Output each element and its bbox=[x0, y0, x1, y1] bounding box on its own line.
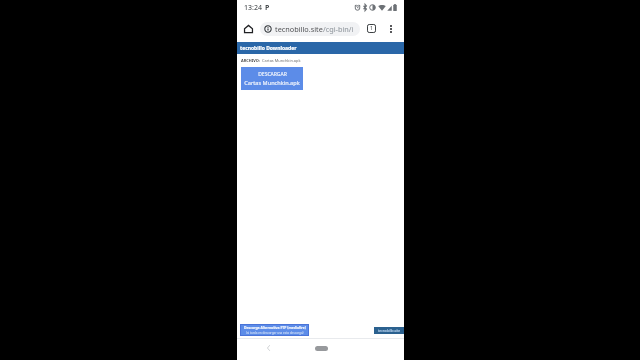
staticText: /cgi-bin/i bbox=[323, 24, 354, 34]
staticText: P bbox=[265, 3, 270, 13]
button[interactable]: tecnobillo.site bbox=[260, 22, 360, 36]
button[interactable]: Home bbox=[237, 15, 260, 42]
staticText: ARCHIVO: bbox=[241, 58, 260, 63]
staticText: tecnobillo.site bbox=[378, 328, 401, 333]
staticText: tecnobillo.site bbox=[275, 24, 323, 34]
staticText: 1 bbox=[370, 25, 373, 32]
button[interactable]: Back bbox=[261, 339, 275, 357]
button[interactable]: More options bbox=[383, 15, 398, 42]
staticText: DESCARGAR bbox=[258, 71, 287, 78]
staticText: Cartas Munchkin.apk bbox=[244, 79, 300, 87]
staticText: (si tarda en descargar usa esta descarga… bbox=[246, 331, 304, 335]
button[interactable]: Home bbox=[306, 341, 336, 355]
button[interactable]: Tabs bbox=[360, 15, 383, 42]
staticText: Descarga Alternativa FTP (mediafire) bbox=[244, 325, 306, 330]
staticText: tecnobillo Downloader bbox=[240, 45, 297, 52]
staticText: 13:24 bbox=[244, 3, 262, 13]
button[interactable]: DESCARGAR bbox=[241, 67, 303, 90]
button[interactable]: tecnobillo.site bbox=[374, 327, 404, 334]
button[interactable]: Descarga Alternativa FTP (mediafire) bbox=[240, 324, 309, 336]
staticText: Cartas Munchkin.apk bbox=[262, 58, 301, 63]
